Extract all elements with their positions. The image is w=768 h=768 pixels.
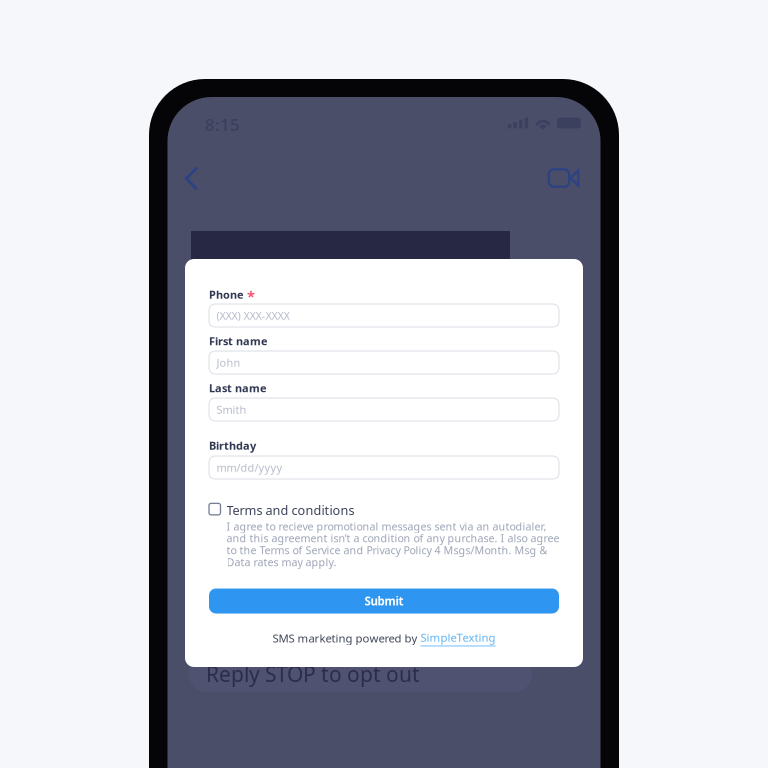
staticText: (XXX) XXX-XXXX	[216, 308, 289, 323]
button[interactable]: Terms and conditions	[209, 502, 559, 518]
staticText: 8:15	[205, 113, 240, 136]
staticText: Last name	[209, 381, 267, 395]
staticText: John	[216, 355, 240, 370]
button[interactable]: SimpleTexting	[420, 630, 495, 646]
staticText: *	[247, 286, 255, 306]
staticText: Terms and conditions	[226, 501, 354, 519]
staticText: Submit	[364, 593, 403, 609]
staticText: SMS marketing powered by	[272, 630, 420, 646]
button[interactable]: FaceTime	[533, 156, 600, 200]
staticText: I agree to recieve promotional messages …	[226, 519, 559, 569]
staticText: Smith	[216, 402, 246, 417]
staticText: mm/dd/yyyy	[216, 460, 282, 475]
staticText: SimpleTexting	[420, 630, 495, 645]
staticText: First name	[209, 334, 268, 348]
staticText: Phone	[209, 287, 244, 302]
button[interactable]: Submit	[209, 588, 559, 613]
button[interactable]: Back	[167, 156, 212, 201]
staticText: Reply STOP to opt out	[206, 660, 420, 688]
staticText: Birthday	[209, 438, 256, 453]
